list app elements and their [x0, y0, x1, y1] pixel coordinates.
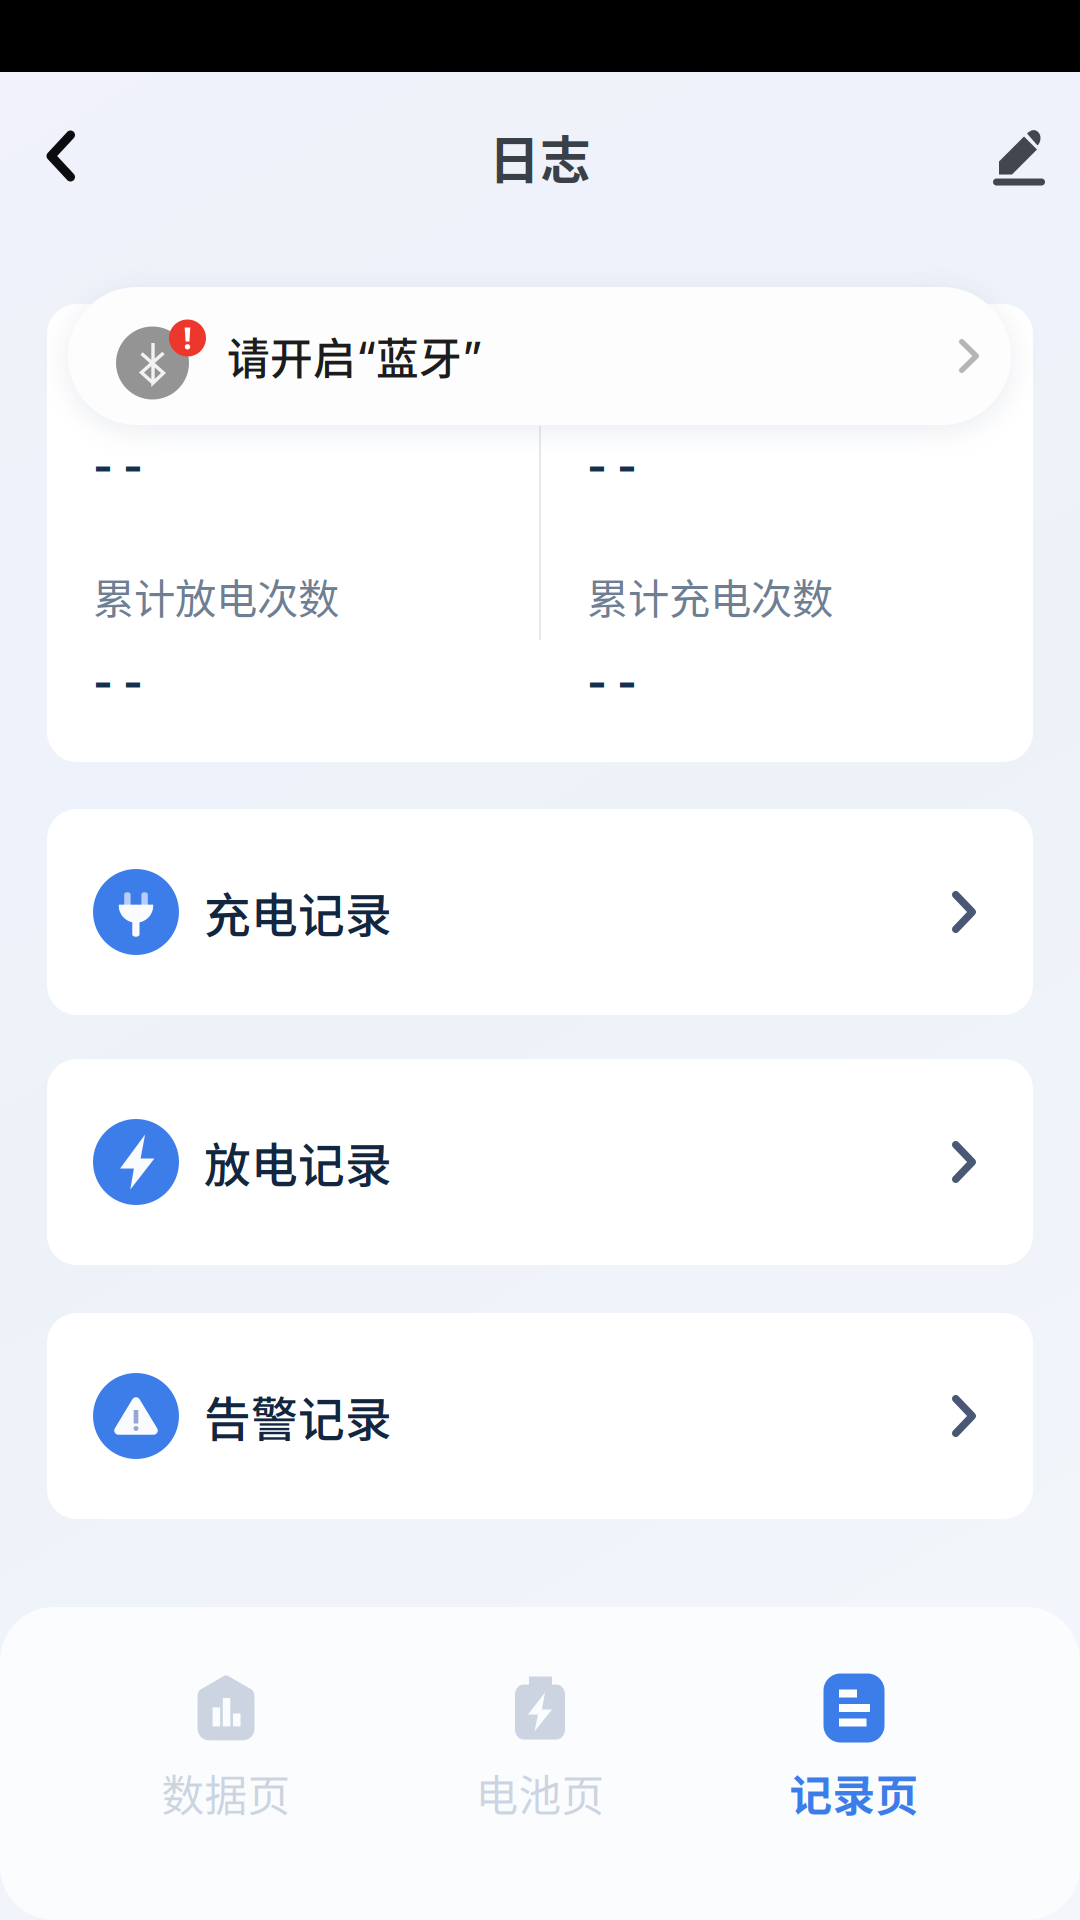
staticText: - - [587, 440, 637, 492]
button[interactable]: Edit [956, 102, 1066, 212]
button[interactable]: 放电记录 [47, 1059, 1033, 1265]
staticText: - - [93, 656, 143, 708]
button[interactable]: 电池页 [383, 1607, 697, 1920]
staticText: 充电记录 [204, 878, 392, 946]
staticText: 记录页 [789, 1762, 918, 1824]
button[interactable]: 请开启“蓝牙” [68, 287, 1011, 425]
staticText: 累计放电次数 [93, 566, 339, 626]
staticText: 日志 [489, 120, 591, 194]
staticText: 请开启“蓝牙” [227, 326, 482, 386]
staticText: - - [93, 440, 143, 492]
button[interactable]: 记录页 [697, 1607, 1011, 1920]
staticText: 数据页 [161, 1762, 290, 1824]
staticText: - - [587, 656, 637, 708]
button[interactable]: 告警记录 [47, 1313, 1033, 1519]
button[interactable]: 充电记录 [47, 809, 1033, 1015]
staticText: 告警记录 [204, 1382, 392, 1450]
staticText: 累计充电次数 [587, 566, 833, 626]
button[interactable]: 数据页 [69, 1607, 383, 1920]
staticText: 放电记录 [204, 1128, 392, 1196]
staticText: 电池页 [475, 1762, 604, 1824]
button[interactable]: Back [8, 102, 118, 212]
